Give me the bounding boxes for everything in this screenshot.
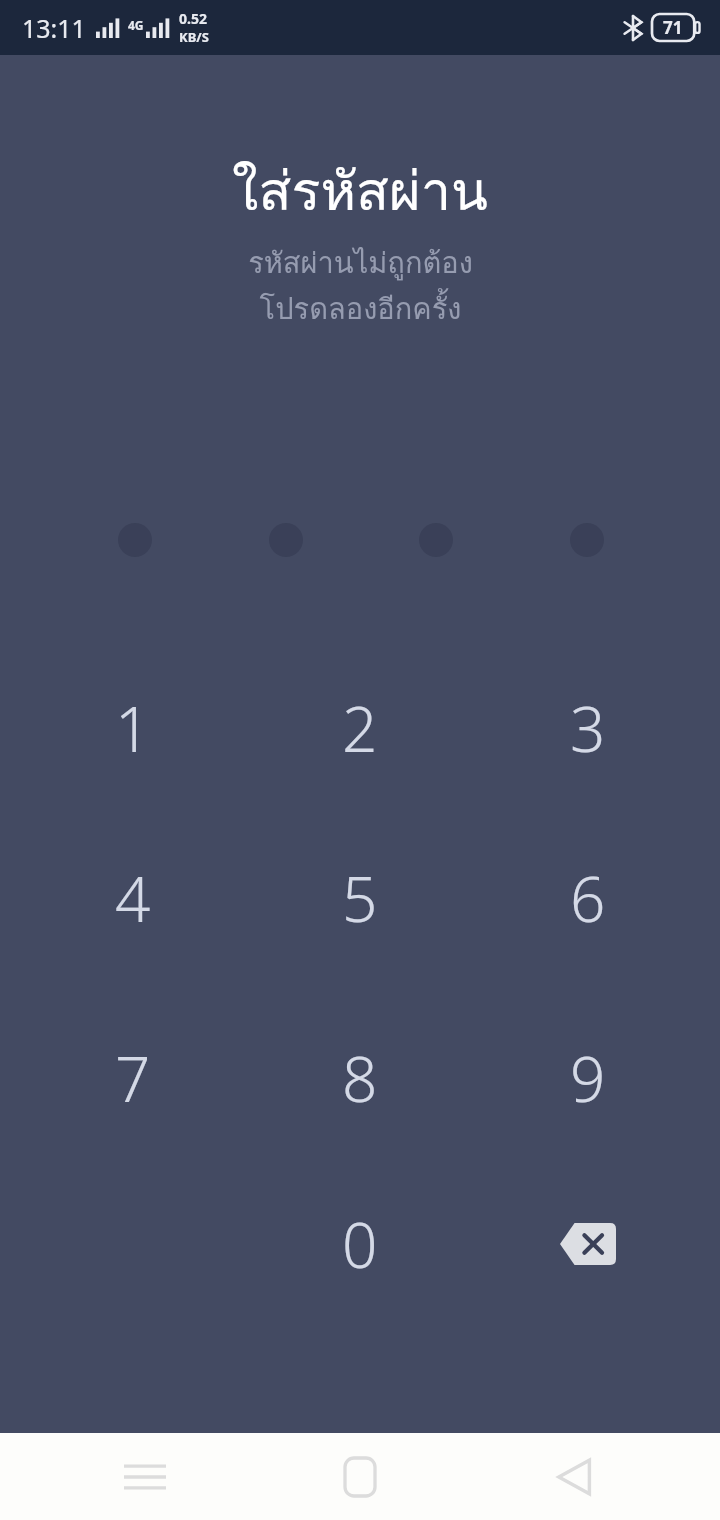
staticText: 2 (342, 686, 378, 770)
button[interactable]: Delete (513, 1189, 663, 1299)
staticText: 9 (570, 1036, 606, 1120)
button[interactable]: 7 (58, 1023, 208, 1133)
staticText: 1 (115, 686, 151, 770)
staticText: 5 (342, 856, 378, 940)
staticText: 4 (115, 856, 151, 940)
button[interactable]: Recent apps (75, 1433, 215, 1520)
staticText: 71 (663, 16, 683, 39)
button[interactable]: 9 (513, 1023, 663, 1133)
staticText: 13:11 (22, 11, 86, 45)
staticText: 7 (115, 1036, 151, 1120)
staticText: 0 (342, 1202, 378, 1286)
staticText: 3 (570, 686, 606, 770)
staticText: 4G (128, 17, 144, 33)
button[interactable]: Home (290, 1433, 430, 1520)
button[interactable]: 0 (285, 1189, 435, 1299)
button[interactable]: 2 (285, 673, 435, 783)
staticText: 0.52 (179, 9, 207, 28)
staticText: KB/S (179, 28, 209, 46)
staticText: ใส่รหัสผ่าน (232, 148, 488, 234)
button[interactable]: 8 (285, 1023, 435, 1133)
staticText: 8 (342, 1036, 378, 1120)
button[interactable]: 3 (513, 673, 663, 783)
button[interactable]: 4 (58, 843, 208, 953)
button[interactable]: 5 (285, 843, 435, 953)
button[interactable]: Back (505, 1433, 645, 1520)
staticText: 6 (570, 856, 606, 940)
button[interactable]: 6 (513, 843, 663, 953)
staticText: รหัสผ่านไม่ถูกต้อง โปรดลองอีกครั้ง (248, 240, 473, 332)
button[interactable]: 1 (58, 673, 208, 783)
